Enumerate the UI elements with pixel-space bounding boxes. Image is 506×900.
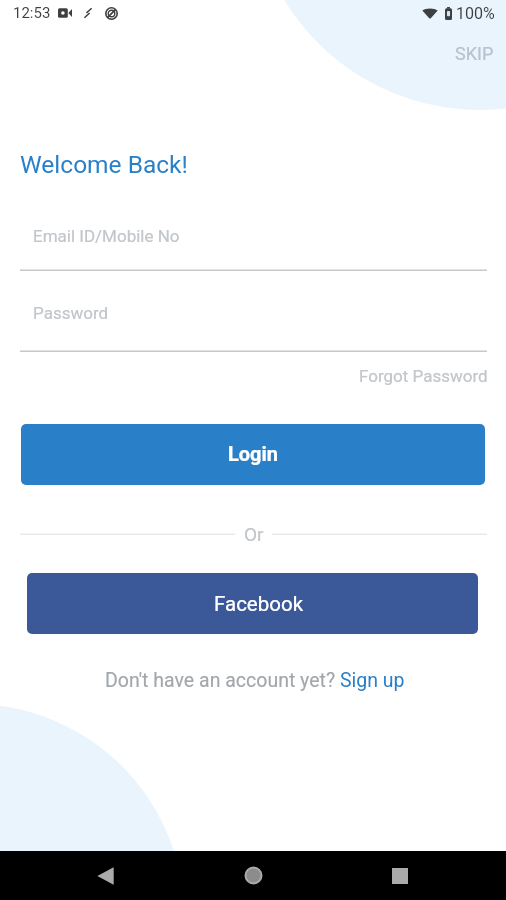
button[interactable]: Home — [229, 851, 277, 900]
staticText: Email ID/Mobile No — [33, 226, 180, 246]
staticText: Welcome Back! — [20, 150, 188, 179]
staticText: 100% — [456, 4, 495, 23]
staticText: Password — [33, 303, 109, 323]
staticText: Don't have an account yet? Sign up — [105, 669, 405, 692]
staticText: Or — [244, 523, 264, 545]
button[interactable]: Forgot Password — [338, 360, 488, 392]
staticText: Forgot Password — [359, 366, 488, 386]
button[interactable]: Don't have an account yet? Sign up — [105, 669, 405, 692]
button[interactable]: Recent apps — [376, 851, 424, 900]
button[interactable]: SKIP — [443, 36, 505, 70]
staticText: Facebook — [214, 592, 304, 616]
button[interactable]: Facebook — [27, 573, 478, 634]
button[interactable]: Back — [81, 851, 129, 900]
staticText: 12:53 — [13, 4, 51, 22]
staticText: Login — [228, 442, 279, 465]
button[interactable]: Login — [21, 424, 485, 485]
staticText: SKIP — [455, 43, 494, 64]
